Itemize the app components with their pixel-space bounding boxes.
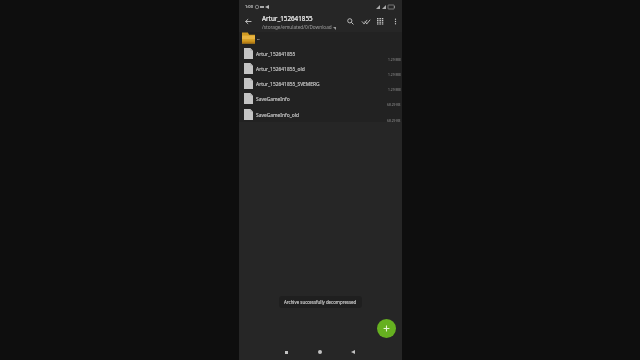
button[interactable]: More options <box>388 14 403 29</box>
button[interactable]: Select all <box>358 14 373 29</box>
staticText: .. <box>257 35 260 42</box>
button[interactable]: Back <box>240 13 257 30</box>
button[interactable]: .. <box>239 32 402 44</box>
staticText: 1.29 MB <box>388 57 401 61</box>
button[interactable]: Search <box>343 14 358 29</box>
button[interactable]: Home <box>312 344 328 360</box>
button[interactable]: Artur_152641855_old <box>239 61 402 76</box>
staticText: 1.29 MB <box>388 72 401 76</box>
staticText: Artur_152641855_old <box>256 66 305 73</box>
staticText: Artur_152641855 <box>262 14 313 23</box>
staticText: /storage/emulated/0/Download <box>262 24 332 30</box>
staticText: 68.29 KB <box>387 102 401 106</box>
staticText: Artur_152641855 <box>256 51 296 58</box>
staticText: 68.29 KB <box>387 118 401 122</box>
button[interactable]: Artur_152641855 <box>239 46 402 61</box>
staticText: SaveGameInfo_old <box>256 112 300 119</box>
button[interactable]: SaveGameInfo_old <box>239 107 402 122</box>
button[interactable]: Artur_152641855_SVEMERG <box>239 76 402 91</box>
button[interactable]: Back <box>345 344 361 360</box>
button[interactable]: Recents <box>278 344 294 360</box>
staticText: Archive successfully decompressed <box>284 299 357 305</box>
button[interactable]: Add <box>377 319 396 338</box>
staticText: 1:00 <box>245 4 253 9</box>
button[interactable]: SaveGameInfo <box>239 91 402 106</box>
button[interactable]: Grid view <box>373 14 388 29</box>
staticText: 1.29 MB <box>388 87 401 91</box>
staticText: SaveGameInfo <box>256 96 290 103</box>
staticText: Artur_152641855_SVEMERG <box>256 81 320 88</box>
